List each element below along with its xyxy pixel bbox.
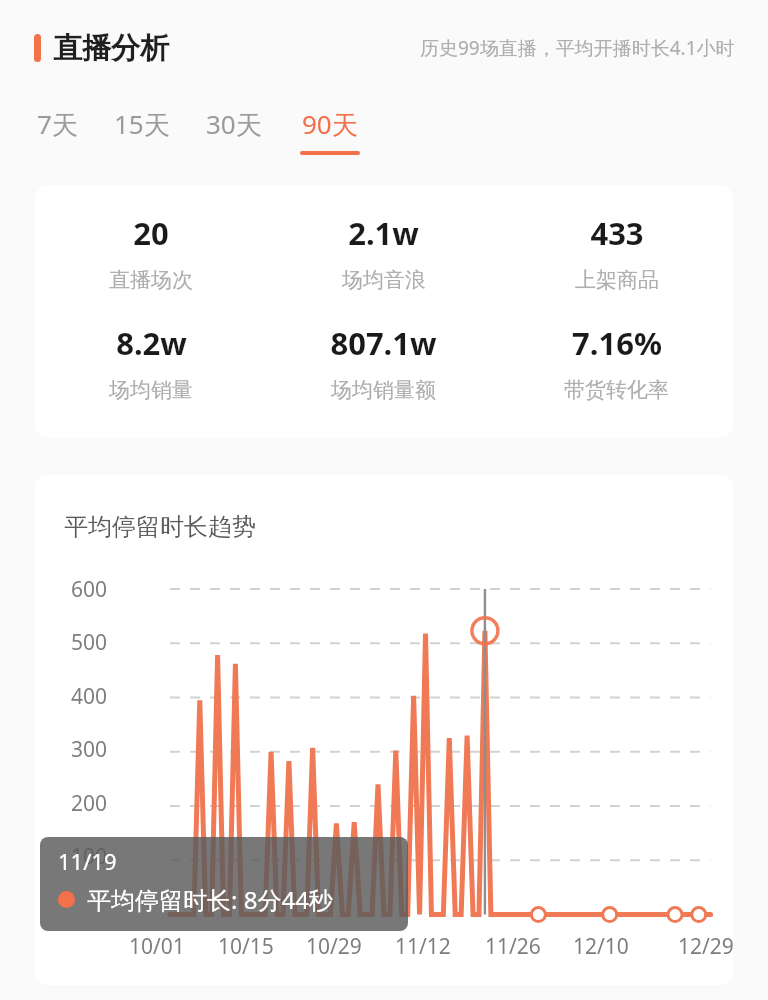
staticText: 100 xyxy=(71,842,108,871)
other: 数据提示 11/19 平均停留时长 8分44秒 xyxy=(40,837,408,931)
staticText: 平均停留时长: 8分44秒 xyxy=(87,883,333,916)
staticText: 上架商品 xyxy=(575,267,659,293)
staticText: 平均停留时长趋势 xyxy=(64,512,256,542)
staticText: 直播分析 xyxy=(53,30,169,67)
staticText: 600 xyxy=(71,575,108,604)
staticText: 12/29 xyxy=(678,932,733,961)
staticText: 7.16% xyxy=(572,322,662,364)
staticText: 10/15 xyxy=(218,932,274,961)
staticText: 433 xyxy=(590,212,644,254)
staticText: 8.2w xyxy=(116,322,187,364)
button[interactable]: 807.1w xyxy=(267,322,500,403)
staticText: 直播场次 xyxy=(109,267,193,293)
staticText: 20 xyxy=(133,212,169,254)
staticText: 200 xyxy=(71,789,108,818)
staticText: 场均销量 xyxy=(109,377,193,403)
staticText: 807.1w xyxy=(330,322,437,364)
staticText: 场均销量额 xyxy=(331,377,436,403)
staticText: 400 xyxy=(71,682,108,711)
staticText: 90天 xyxy=(302,106,358,142)
button[interactable]: 8.2w xyxy=(35,322,267,403)
staticText: 带货转化率 xyxy=(564,377,669,403)
button[interactable]: 2.1w xyxy=(267,212,500,293)
button[interactable]: 20 xyxy=(35,185,733,438)
button[interactable]: 平均停留时长趋势 xyxy=(35,475,733,985)
staticText: 500 xyxy=(71,628,108,657)
staticText: 11/26 xyxy=(485,932,541,961)
button[interactable]: 15天 xyxy=(109,103,175,158)
staticText: 历史99场直播，平均开播时长4.1小时 xyxy=(420,35,735,61)
button[interactable]: 7.16% xyxy=(500,322,733,403)
staticText: 11/12 xyxy=(395,932,451,961)
staticText: 10/29 xyxy=(306,932,362,961)
button[interactable]: 7天 xyxy=(31,103,83,158)
button[interactable]: 90天 xyxy=(297,103,363,158)
staticText: 10/01 xyxy=(129,932,185,961)
staticText: 300 xyxy=(71,735,108,764)
button[interactable]: 30天 xyxy=(201,103,267,158)
staticText: 30天 xyxy=(206,106,262,142)
staticText: 15天 xyxy=(114,106,170,142)
button[interactable]: 433 xyxy=(500,212,733,293)
staticText: 11/19 xyxy=(58,846,117,876)
staticText: 12/10 xyxy=(573,932,629,961)
staticText: 2.1w xyxy=(348,212,419,254)
staticText: 7天 xyxy=(37,106,78,142)
button[interactable]: 20 xyxy=(35,212,267,293)
staticText: 场均音浪 xyxy=(342,267,426,293)
